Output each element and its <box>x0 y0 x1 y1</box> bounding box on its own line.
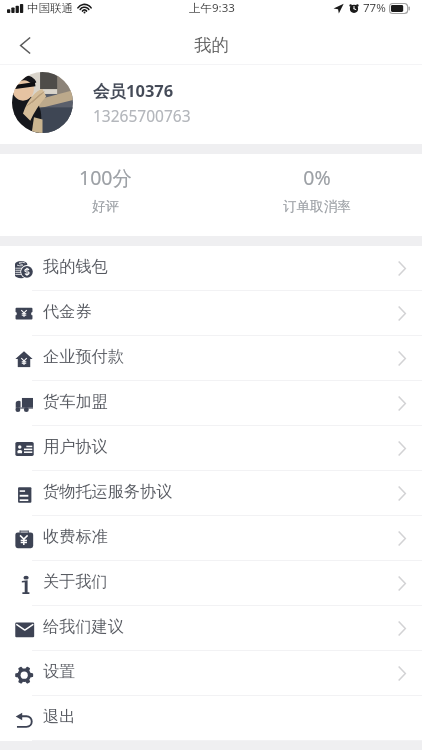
button[interactable]: 会员10376 <box>0 65 422 144</box>
staticText: 13265700763 <box>93 105 191 126</box>
staticText: 货物托运服务协议 <box>43 481 173 501</box>
staticText: 会员10376 <box>93 79 174 102</box>
button[interactable]: 设置 <box>0 651 422 696</box>
staticText: 用户协议 <box>43 436 108 456</box>
button[interactable]: 关于我们 <box>0 561 422 606</box>
button[interactable]: 0% <box>211 170 422 221</box>
button[interactable]: 100分 <box>0 170 211 221</box>
staticText: 货车加盟 <box>43 391 108 411</box>
staticText: 退出 <box>43 706 76 726</box>
button[interactable]: 货物托运服务协议 <box>0 471 422 516</box>
button[interactable]: 收费标准 <box>0 516 422 561</box>
button[interactable]: 给我们建议 <box>0 606 422 651</box>
staticText: 关于我们 <box>43 571 108 591</box>
staticText: 100分 <box>79 164 132 191</box>
button[interactable]: 我的钱包 <box>0 246 422 291</box>
staticText: 企业预付款 <box>43 346 124 366</box>
button[interactable]: 企业预付款 <box>0 336 422 381</box>
button[interactable]: 货车加盟 <box>0 381 422 426</box>
staticText: 好评 <box>92 198 119 215</box>
staticText: 中国联通 <box>27 1 73 15</box>
staticText: 给我们建议 <box>43 616 124 636</box>
staticText: 77% <box>363 0 386 16</box>
button[interactable]: 用户协议 <box>0 426 422 471</box>
button[interactable]: 代金券 <box>0 291 422 336</box>
staticText: 代金券 <box>43 301 92 321</box>
staticText: 上午9:33 <box>189 0 235 16</box>
staticText: 设置 <box>43 661 76 681</box>
staticText: 收费标准 <box>43 526 108 546</box>
button[interactable]: 退出 <box>0 696 422 741</box>
staticText: 我的 <box>194 34 229 56</box>
button[interactable]: Back <box>0 26 52 65</box>
staticText: 0% <box>303 164 331 191</box>
staticText: 订单取消率 <box>283 198 351 215</box>
staticText: 我的钱包 <box>43 256 108 276</box>
